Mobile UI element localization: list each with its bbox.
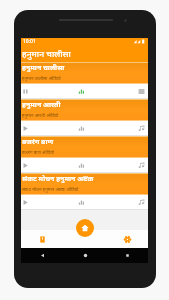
button[interactable]: Now playing (77, 161, 86, 170)
button[interactable]: Now playing (77, 198, 86, 207)
button[interactable]: Back (21, 248, 64, 263)
button[interactable]: Now playing (77, 124, 86, 133)
button[interactable]: संकट मोचन हनुमान अष्टक (21, 173, 148, 210)
button[interactable]: Pause (21, 87, 30, 96)
button[interactable]: Home (64, 248, 106, 263)
button[interactable]: Recents (106, 248, 148, 263)
button[interactable]: हनुमान आरती (21, 99, 148, 136)
button[interactable]: Download audio (137, 198, 146, 207)
button[interactable]: Chalisa (21, 230, 64, 248)
staticText: हनुमान चालीसा ऑडियो (22, 75, 61, 81)
button[interactable]: Play (21, 198, 30, 207)
staticText: बजरंग बाण ऑडियो (22, 149, 55, 155)
button[interactable]: Download audio (137, 124, 146, 133)
staticText: हनुमान चालीसा (22, 63, 65, 73)
button[interactable]: हनुमान चालीसा (21, 62, 148, 99)
button[interactable]: Aarti (76, 219, 94, 237)
staticText: संकट मोचन हनुमान अष्टक ऑडियो (22, 186, 79, 192)
button[interactable]: Download audio (137, 161, 146, 170)
staticText: बजरंग बाण (22, 137, 54, 147)
button[interactable]: Now playing (77, 87, 86, 96)
button[interactable]: Play (21, 161, 30, 170)
button[interactable]: Settings (106, 230, 148, 248)
staticText: हनुमान आरती (22, 100, 61, 110)
staticText: 10:01 (23, 38, 36, 45)
staticText: हनुमान चालीसा (22, 48, 71, 60)
button[interactable]: हनुमान चालीसा (21, 45, 148, 62)
button[interactable]: बजरंग बाण (21, 136, 148, 173)
staticText: संकट मोचन हनुमान अष्टक (22, 174, 94, 184)
button[interactable]: Stop (137, 87, 146, 96)
staticText: हनुमान आरती ऑडियो (22, 112, 59, 118)
button[interactable]: Play (21, 124, 30, 133)
